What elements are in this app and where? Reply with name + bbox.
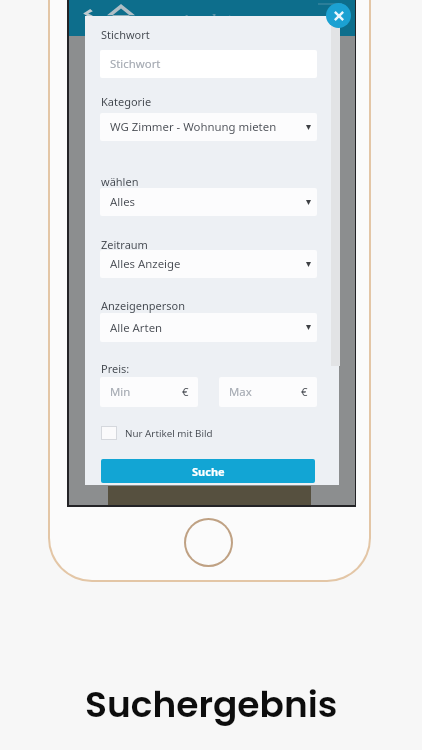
staticText: Zeitraum <box>101 237 148 252</box>
button[interactable]: Suche <box>101 459 315 483</box>
button[interactable]: Stichwort <box>100 50 317 78</box>
staticText: Alle Arten <box>110 320 163 336</box>
other: Back <box>83 9 93 18</box>
staticText: Stichwort <box>110 56 161 72</box>
staticText: Max <box>229 384 252 400</box>
staticText: Min <box>110 384 131 400</box>
button[interactable]: Nur Artikel mit Bild <box>101 426 213 440</box>
staticText: Nur Artikel mit Bild <box>125 427 213 440</box>
staticText: Angebote <box>181 11 238 27</box>
button[interactable]: WG Zimmer - Wohnung mieten <box>100 113 317 141</box>
button[interactable]: Alles <box>100 188 317 216</box>
staticText: Anzeigenperson <box>101 298 186 313</box>
staticText: € <box>301 384 308 400</box>
staticText: € <box>182 384 189 400</box>
button[interactable]: Alle Arten <box>100 313 317 342</box>
button[interactable]: Alles Anzeige <box>100 250 317 278</box>
staticText: WG Zimmer - Wohnung mieten <box>110 119 277 135</box>
staticText: Preis: <box>101 361 130 376</box>
button[interactable]: Max <box>219 377 317 407</box>
staticText: Alles <box>110 194 136 210</box>
button[interactable]: Min <box>100 377 198 407</box>
staticText: Kategorie <box>101 94 152 109</box>
staticText: Suchergebnis <box>85 679 338 729</box>
staticText: Stichwort <box>101 27 150 42</box>
button[interactable]: Close <box>326 3 351 28</box>
staticText: Suche <box>192 464 225 479</box>
staticText: wählen <box>101 174 139 189</box>
staticText: Alles Anzeige <box>110 256 181 272</box>
